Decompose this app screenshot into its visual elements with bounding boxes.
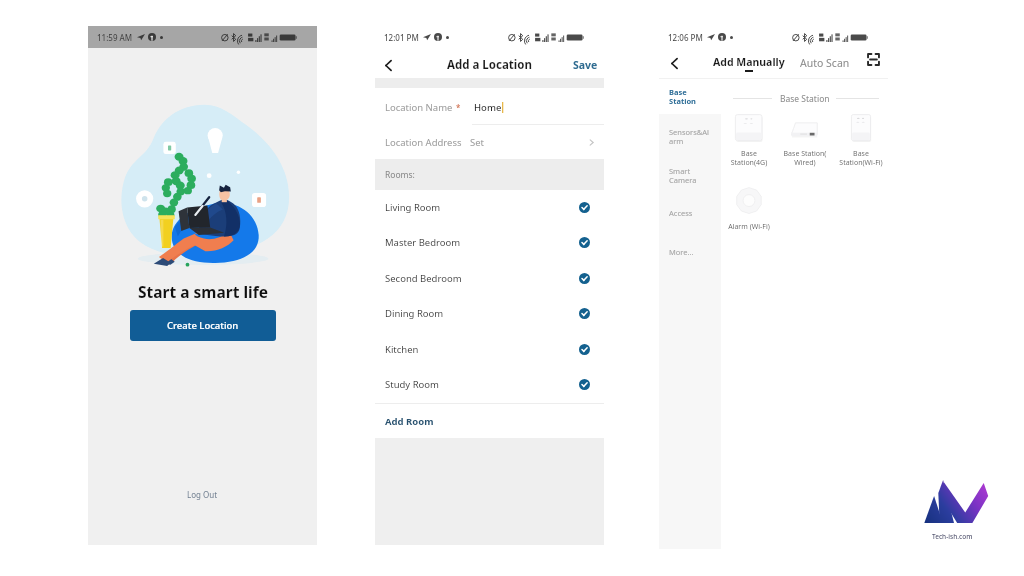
staticText: Auto Scan: [800, 56, 850, 70]
staticText: Log Out: [187, 489, 218, 500]
staticText: Smart Camera: [669, 166, 697, 185]
staticText: Create Location: [167, 319, 239, 332]
button[interactable]: Master Bedroom: [375, 225, 604, 260]
staticText: 12:06 PM: [668, 32, 703, 43]
button[interactable]: Smart Camera: [659, 162, 721, 188]
staticText: Base Station( Wired): [777, 149, 833, 167]
staticText: Add Room: [385, 415, 434, 428]
button[interactable]: Save: [567, 53, 604, 77]
button[interactable]: Base Station(Wi-Fi): [833, 111, 889, 167]
button[interactable]: Back: [375, 52, 401, 78]
staticText: Add Manually: [713, 55, 785, 69]
staticText: Location Name: [385, 101, 453, 114]
button[interactable]: Base Station( Wired): [777, 111, 833, 167]
staticText: Start a smart life: [138, 281, 268, 302]
button[interactable]: Alarm (Wi-Fi): [721, 184, 777, 232]
button[interactable]: Add Manually: [711, 48, 786, 78]
staticText: 12:01 PM: [384, 32, 419, 43]
staticText: Dining Room: [385, 307, 444, 320]
staticText: Set: [470, 136, 485, 149]
button[interactable]: Scan QR code: [862, 48, 884, 70]
button[interactable]: Kitchen: [375, 332, 604, 367]
staticText: Base Station: [669, 87, 696, 106]
button[interactable]: Study Room: [375, 367, 604, 402]
staticText: Rooms:: [385, 169, 415, 181]
button[interactable]: More...: [659, 239, 721, 265]
staticText: Second Bedroom: [385, 272, 462, 285]
staticText: Home: [474, 101, 502, 114]
staticText: Living Room: [385, 201, 441, 214]
staticText: Study Room: [385, 378, 439, 391]
button[interactable]: Auto Scan: [797, 48, 853, 78]
staticText: Master Bedroom: [385, 236, 461, 249]
staticText: *: [456, 102, 461, 113]
staticText: Access: [669, 208, 693, 218]
button[interactable]: Second Bedroom: [375, 261, 604, 296]
staticText: Add a Location: [447, 57, 532, 73]
staticText: More...: [669, 247, 694, 257]
button[interactable]: Dining Room: [375, 296, 604, 331]
staticText: Base Station(4G): [721, 149, 777, 167]
staticText: Save: [573, 58, 598, 72]
staticText: Base Station: [780, 93, 830, 105]
staticText: Kitchen: [385, 343, 419, 356]
button[interactable]: Access: [659, 200, 721, 226]
button[interactable]: Living Room: [375, 190, 604, 225]
staticText: Location Address: [385, 136, 462, 149]
button[interactable]: Add Room: [375, 404, 604, 438]
staticText: Base Station(Wi-Fi): [833, 149, 889, 167]
button[interactable]: Location Address: [375, 125, 604, 159]
button[interactable]: Back: [661, 50, 687, 76]
button[interactable]: Log Out: [175, 485, 230, 504]
button[interactable]: Create Location: [130, 310, 276, 341]
button[interactable]: Sensors&Al arm: [659, 123, 721, 149]
button[interactable]: Base Station: [659, 83, 721, 109]
staticText: 11:59 AM: [97, 32, 133, 43]
staticText: Tech-ish.com: [932, 532, 973, 541]
staticText: Alarm (Wi-Fi): [721, 222, 777, 232]
staticText: Sensors&Al arm: [669, 127, 710, 146]
button[interactable]: Base Station(4G): [721, 111, 777, 167]
